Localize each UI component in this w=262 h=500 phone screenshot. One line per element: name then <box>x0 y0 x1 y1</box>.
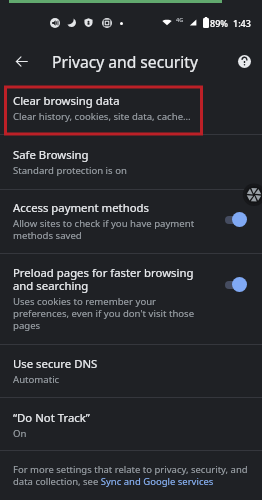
staticText: For more settings that relate to privacy… <box>13 463 252 488</box>
staticText: Privacy and security <box>52 51 198 72</box>
staticText: On <box>13 427 27 440</box>
staticText: 1:43 <box>233 17 251 29</box>
staticText: Uses cookies to remember your preference… <box>13 295 209 332</box>
button[interactable]: Help <box>230 47 258 75</box>
button[interactable]: “Do Not Track” <box>0 400 262 454</box>
button[interactable]: Use secure DNS <box>0 346 262 400</box>
button[interactable]: Toggle <box>222 276 252 296</box>
staticText: Preload pages for faster browsing and se… <box>13 265 209 293</box>
staticText: Standard protection is on <box>13 164 127 177</box>
button[interactable]: Access payment methods <box>0 190 262 255</box>
staticText: Clear history, cookies, site data, cache… <box>13 110 191 123</box>
button[interactable]: Toggle <box>222 211 252 231</box>
button[interactable]: Clear browsing data <box>0 83 262 137</box>
staticText: Allow sites to check if you have payment… <box>13 217 209 242</box>
button[interactable]: Safe Browsing <box>0 137 262 191</box>
staticText: 89% <box>210 17 228 29</box>
staticText: “Do Not Track” <box>13 410 90 425</box>
staticText: Clear browsing data <box>13 93 120 108</box>
staticText: Access payment methods <box>13 200 149 215</box>
staticText: Automatic <box>13 373 60 386</box>
button[interactable]: Preload pages for faster browsing and se… <box>0 255 262 346</box>
button[interactable]: Back <box>7 47 36 76</box>
staticText: Use secure DNS <box>13 356 98 371</box>
staticText: 4G <box>176 16 184 23</box>
staticText: Safe Browsing <box>13 147 89 162</box>
